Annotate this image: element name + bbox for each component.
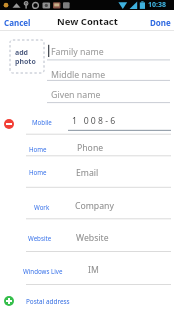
- staticText: Home: [29, 168, 47, 176]
- staticText: Phone: [77, 142, 104, 154]
- staticText: Website: [28, 234, 52, 242]
- staticText: Family name: [51, 46, 104, 58]
- button[interactable]: Work: [0, 187, 174, 219]
- button[interactable]: [4, 119, 14, 129]
- staticText: Work: [34, 203, 50, 211]
- staticText: Cancel: [4, 17, 31, 28]
- staticText: Email: [76, 167, 99, 179]
- button[interactable]: Cancel: [2, 10, 29, 30]
- staticText: Home: [29, 145, 47, 153]
- button[interactable]: Done: [153, 10, 174, 30]
- staticText: Given name: [51, 89, 101, 101]
- staticText: New Contact: [57, 15, 118, 28]
- staticText: Mobile: [32, 118, 52, 126]
- staticText: 1 008-6: [72, 115, 118, 127]
- staticText: Postal address: [26, 297, 70, 306]
- button[interactable]: Website: [0, 218, 174, 251]
- button[interactable]: Postal address: [0, 285, 174, 310]
- staticText: Website: [76, 232, 109, 244]
- staticText: Done: [150, 17, 171, 28]
- button[interactable]: Windows Live: [0, 251, 174, 284]
- staticText: Windows Live: [23, 267, 63, 275]
- staticText: 10:38: [148, 0, 166, 10]
- staticText: add: [15, 48, 29, 58]
- button[interactable]: Home: [0, 155, 174, 187]
- button[interactable]: Mobile: [0, 103, 174, 134]
- button[interactable]: add: [10, 40, 44, 73]
- button[interactable]: [4, 296, 14, 306]
- staticText: Middle name: [51, 69, 106, 81]
- staticText: IM: [88, 264, 99, 276]
- staticText: photo: [15, 57, 36, 67]
- button[interactable]: Home: [0, 134, 174, 156]
- staticText: Company: [75, 200, 114, 212]
